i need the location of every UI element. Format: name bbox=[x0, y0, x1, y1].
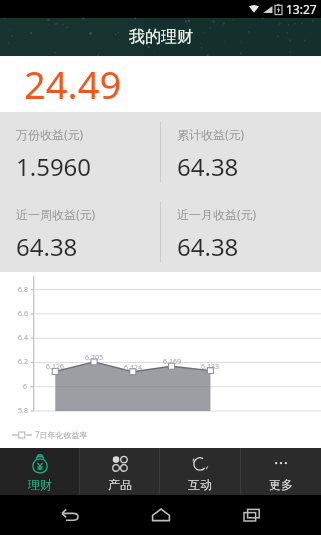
staticText: 6.169 bbox=[163, 357, 181, 367]
staticText: 产品 bbox=[108, 477, 132, 492]
staticText: 近一月收益(元) bbox=[177, 206, 257, 222]
staticText: 理财 bbox=[28, 477, 52, 492]
button[interactable]: Home bbox=[139, 495, 183, 535]
staticText: 64.38 bbox=[16, 230, 78, 263]
staticText: 6.2 bbox=[18, 357, 28, 367]
staticText: 6.126 bbox=[46, 362, 64, 372]
staticText: 互动 bbox=[188, 477, 212, 492]
staticText: 更多 bbox=[269, 477, 293, 492]
button[interactable]: 累计收益(元) bbox=[161, 112, 321, 192]
staticText: 万份收益(元) bbox=[16, 126, 84, 142]
staticText: 近一周收益(元) bbox=[16, 206, 96, 222]
button[interactable]: 万份收益(元) bbox=[0, 112, 160, 192]
staticText: 6.8 bbox=[18, 285, 28, 295]
staticText: 6 bbox=[23, 382, 28, 392]
staticText: 6.133 bbox=[201, 362, 219, 372]
other: 产品 bbox=[109, 453, 131, 475]
other: 互动 bbox=[189, 453, 211, 475]
staticText: 我的理财 bbox=[129, 27, 193, 47]
staticText: 6.6 bbox=[18, 309, 28, 319]
button[interactable]: 近一周收益(元) bbox=[0, 192, 160, 272]
button[interactable]: Recents bbox=[230, 495, 274, 535]
staticText: 64.38 bbox=[177, 150, 239, 183]
staticText: 6.205 bbox=[85, 353, 103, 363]
staticText: 5.8 bbox=[18, 406, 28, 416]
staticText: 13:27 bbox=[286, 1, 317, 17]
staticText: 64.38 bbox=[177, 230, 239, 263]
staticText: 累计收益(元) bbox=[177, 126, 245, 142]
other: 理财 bbox=[29, 453, 51, 475]
staticText: 6.124 bbox=[124, 363, 142, 373]
button[interactable]: 近一月收益(元) bbox=[161, 192, 321, 272]
staticText: 24.49 bbox=[24, 58, 122, 110]
other: 更多 bbox=[270, 453, 292, 475]
button[interactable]: 互动 bbox=[160, 448, 240, 495]
button[interactable]: 理财 bbox=[0, 448, 79, 495]
button[interactable]: 产品 bbox=[80, 448, 159, 495]
staticText: 7日年化收益率 bbox=[35, 429, 88, 440]
staticText: 1.5960 bbox=[16, 150, 92, 183]
staticText: 6.4 bbox=[18, 333, 28, 343]
button[interactable]: Back bbox=[47, 495, 91, 535]
button[interactable]: 更多 bbox=[241, 448, 321, 495]
